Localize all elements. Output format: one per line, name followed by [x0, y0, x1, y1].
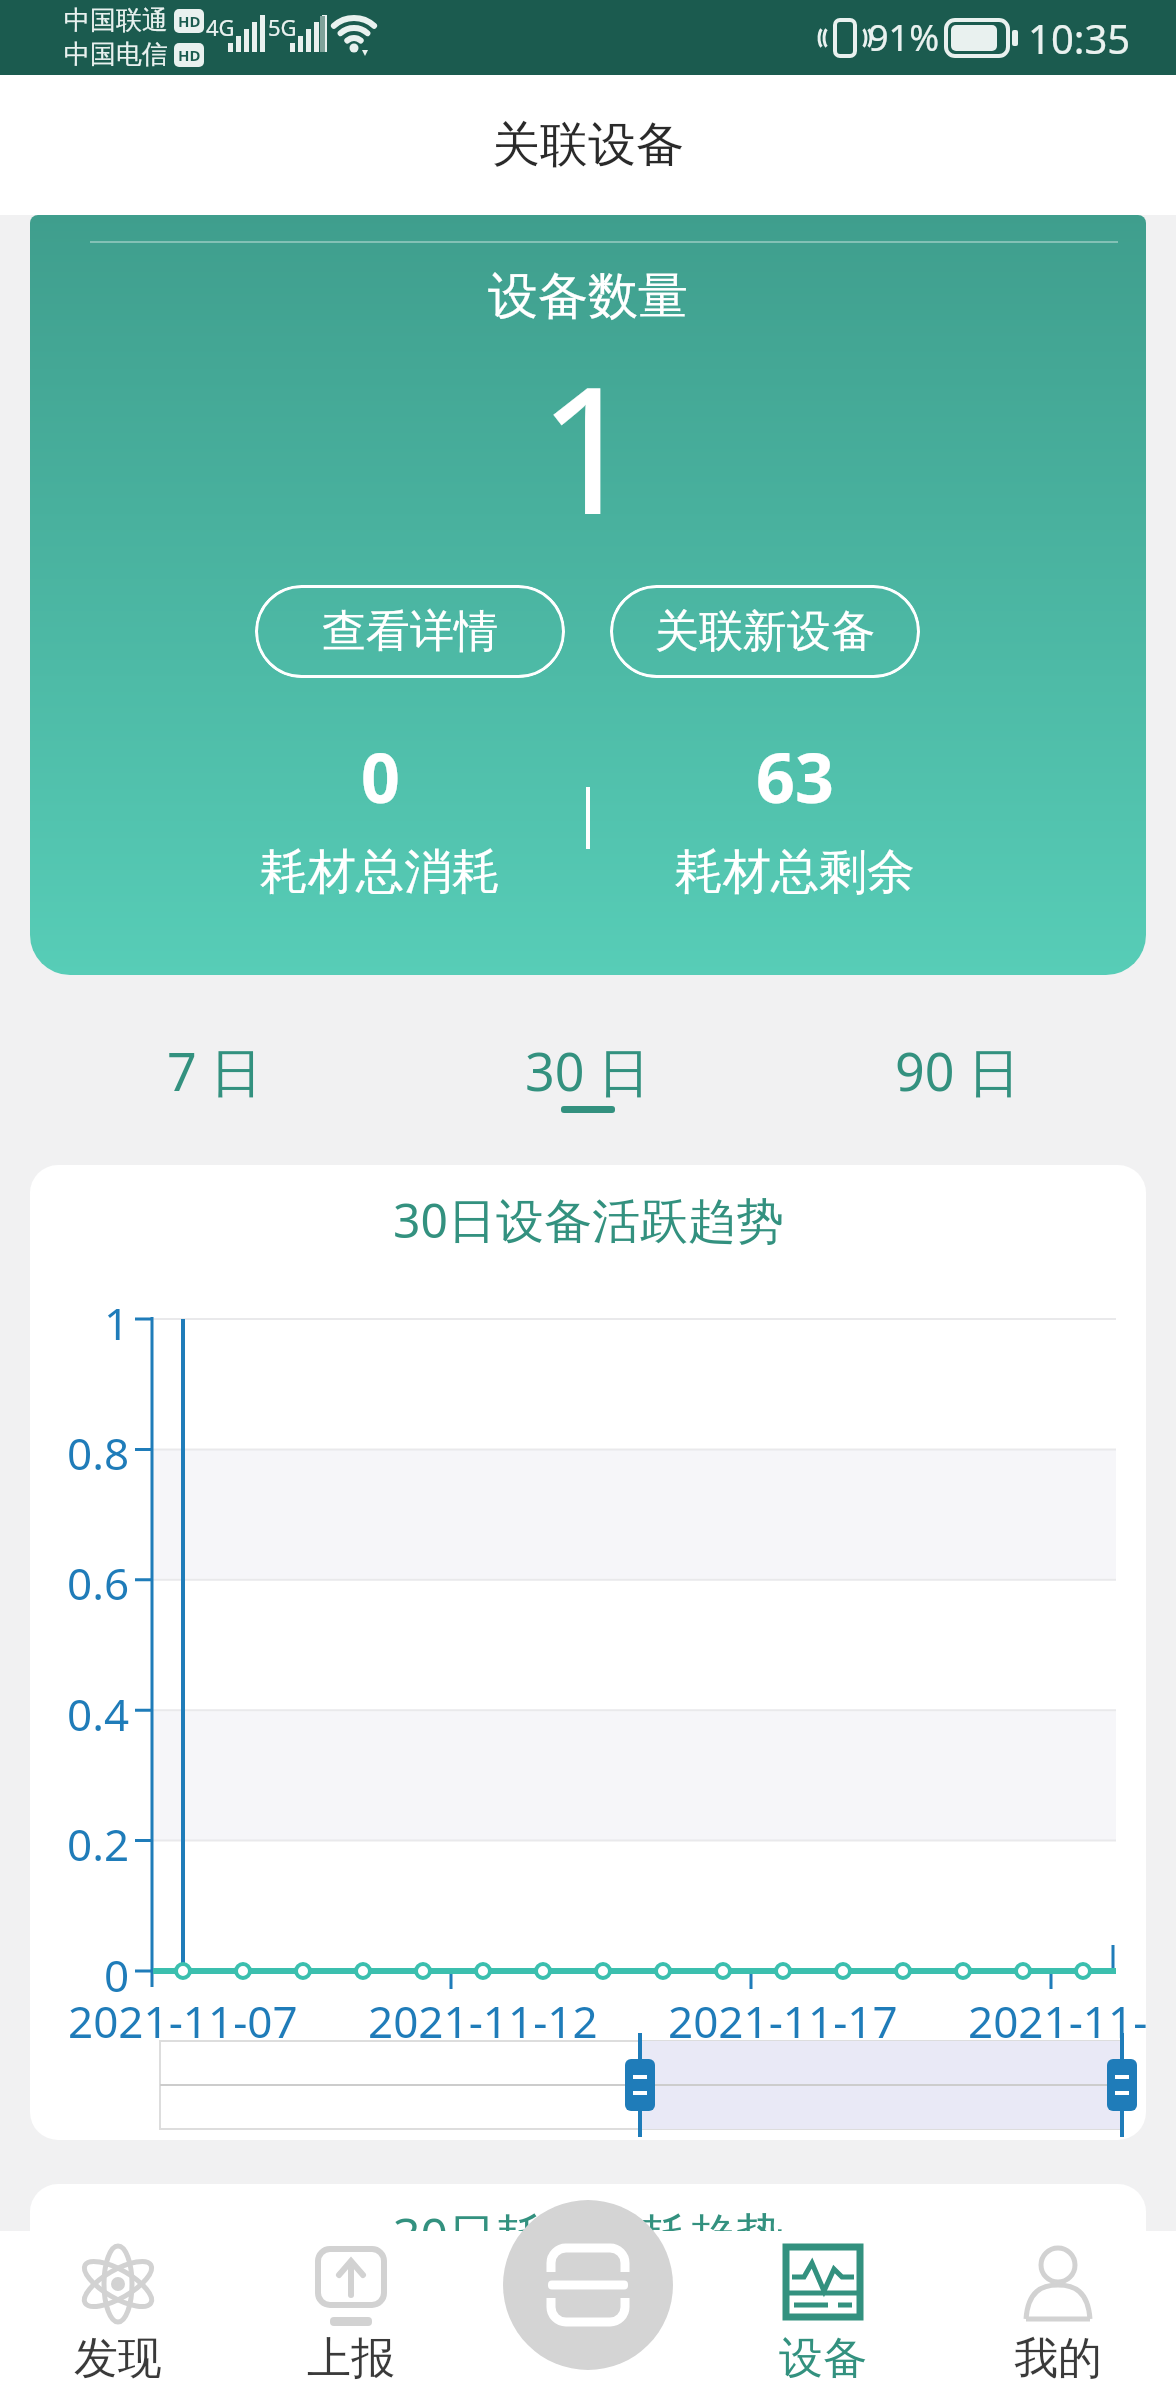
staticText: 2021-11-07 [68, 1991, 298, 2043]
staticText: 63 [756, 730, 834, 820]
staticText: 关联设备 [492, 115, 684, 175]
staticText: 上报 [307, 2331, 395, 2386]
button[interactable]: 30 日 [478, 1035, 698, 1105]
staticText: 1 [538, 327, 639, 557]
staticText: 0.4 [67, 1684, 130, 1736]
staticText: 0 [104, 1945, 130, 1997]
staticText: 30日设备活跃趋势 [393, 1187, 784, 1253]
staticText: 2021-11-12 [368, 1991, 598, 2043]
staticText: 10:35 [1028, 11, 1131, 65]
staticText: 0.6 [67, 1553, 130, 1605]
staticText: 90 日 [895, 1035, 1021, 1105]
staticText: 5G [268, 12, 297, 42]
staticText: 91% [868, 13, 940, 62]
staticText: 中国电信 [64, 38, 168, 71]
staticText: 我的 [1014, 2331, 1102, 2386]
button[interactable] [503, 2200, 673, 2370]
button[interactable]: 我的 [968, 2231, 1148, 2400]
staticText: 查看详情 [322, 604, 498, 659]
button[interactable]: 设备 [733, 2231, 913, 2400]
staticText: 1 [104, 1293, 130, 1345]
staticText: 发现 [74, 2331, 162, 2386]
staticText: HD [178, 11, 201, 31]
button[interactable]: 90 日 [848, 1035, 1068, 1105]
staticText: 设备 [779, 2331, 867, 2386]
staticText: 4G [206, 12, 235, 42]
staticText: 2021-11-17 [668, 1991, 898, 2043]
staticText: 2021-11-22 [968, 1991, 1146, 2043]
staticText: 0.2 [67, 1814, 130, 1866]
staticText: 30日耗材消耗趋势 [393, 2202, 784, 2268]
staticText: 0.8 [67, 1423, 130, 1475]
button[interactable]: 发现 [28, 2231, 208, 2400]
staticText: 30 日 [525, 1035, 651, 1105]
staticText: HD [178, 45, 201, 65]
staticText: 7 日 [167, 1035, 263, 1105]
staticText: 设备数量 [488, 265, 688, 328]
button[interactable]: 7 日 [105, 1035, 325, 1105]
staticText: 耗材总消耗 [260, 842, 500, 902]
staticText: 关联新设备 [655, 604, 875, 659]
staticText: 中国联通 [64, 4, 168, 37]
button[interactable]: 上报 [261, 2231, 441, 2400]
button[interactable]: 关联新设备 [610, 585, 920, 678]
staticText: 0 [361, 730, 400, 820]
button[interactable]: 查看详情 [255, 585, 565, 678]
staticText: 耗材总剩余 [675, 842, 915, 902]
